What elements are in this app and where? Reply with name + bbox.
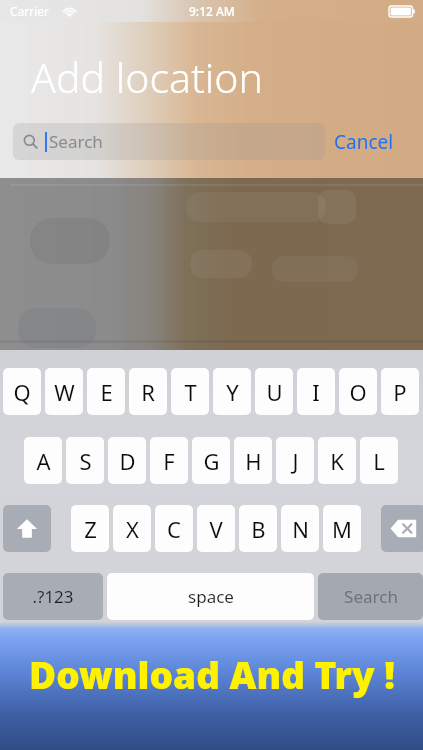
button[interactable]: X (113, 505, 151, 552)
button[interactable]: space (107, 573, 314, 620)
button[interactable]: B (239, 505, 277, 552)
button[interactable]: Cancel (334, 123, 394, 160)
staticText: O (349, 377, 367, 407)
staticText: L (373, 446, 385, 476)
button[interactable]: F (150, 437, 188, 484)
button[interactable]: K (318, 437, 356, 484)
staticText: A (36, 446, 51, 476)
staticText: E (100, 377, 113, 407)
button[interactable]: S (66, 437, 104, 484)
staticText: Q (13, 377, 31, 407)
staticText: D (119, 446, 136, 476)
staticText: P (393, 377, 407, 407)
staticText: G (203, 446, 220, 476)
staticText: 9:12 AM (189, 3, 235, 19)
staticText: W (54, 377, 75, 407)
button[interactable]: J (276, 437, 314, 484)
button[interactable]: G (192, 437, 230, 484)
button[interactable]: R (129, 368, 167, 415)
button[interactable]: Search (13, 123, 325, 160)
staticText: T (184, 377, 197, 407)
staticText: space (188, 585, 234, 608)
staticText: S (79, 446, 92, 476)
button[interactable]: O (339, 368, 377, 415)
staticText: B (251, 514, 266, 544)
button[interactable]: Search (318, 573, 423, 620)
button[interactable]: E (87, 368, 125, 415)
staticText: M (332, 514, 352, 544)
staticText: V (209, 514, 223, 544)
staticText: Z (84, 514, 97, 544)
staticText: Search (49, 130, 103, 153)
button[interactable]: Y (213, 368, 251, 415)
staticText: H (245, 446, 262, 476)
button[interactable]: U (255, 368, 293, 415)
button[interactable]: .?123 (3, 573, 103, 620)
button[interactable]: C (155, 505, 193, 552)
button[interactable]: Shift (3, 505, 51, 552)
button[interactable]: L (360, 437, 398, 484)
button[interactable]: Z (71, 505, 109, 552)
staticText: Carrier (10, 3, 50, 19)
staticText: R (141, 377, 155, 407)
staticText: K (330, 446, 344, 476)
staticText: C (167, 514, 181, 544)
button[interactable]: Download And Try ! (0, 622, 423, 750)
button[interactable]: M (323, 505, 361, 552)
button[interactable]: D (108, 437, 146, 484)
staticText: Download And Try ! (29, 649, 395, 699)
staticText: J (292, 446, 299, 476)
button[interactable]: P (381, 368, 419, 415)
staticText: Search (344, 585, 398, 608)
button[interactable]: Q (3, 368, 41, 415)
button[interactable]: N (281, 505, 319, 552)
staticText: Add location (31, 49, 263, 105)
staticText: Y (226, 377, 239, 407)
button[interactable]: W (45, 368, 83, 415)
button[interactable]: T (171, 368, 209, 415)
staticText: Cancel (334, 129, 394, 155)
button[interactable]: Backspace (381, 505, 423, 552)
staticText: .?123 (32, 585, 74, 608)
button[interactable]: A (24, 437, 62, 484)
staticText: X (126, 514, 139, 544)
staticText: U (266, 377, 283, 407)
button[interactable]: I (297, 368, 335, 415)
button[interactable]: H (234, 437, 272, 484)
staticText: F (163, 446, 175, 476)
staticText: N (292, 514, 309, 544)
button[interactable]: V (197, 505, 235, 552)
staticText: I (312, 377, 320, 407)
